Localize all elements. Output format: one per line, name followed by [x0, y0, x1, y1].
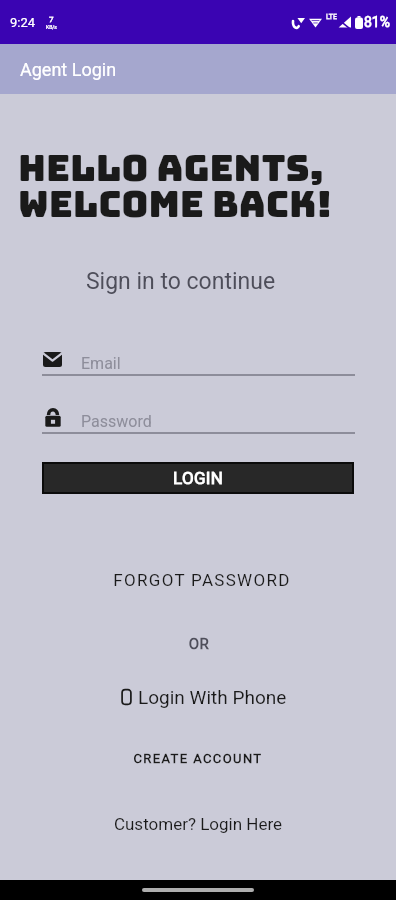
staticText: LOGIN — [173, 468, 224, 488]
staticText: Agent Login — [20, 59, 117, 80]
other: Battery — [355, 16, 363, 29]
staticText: Email — [81, 354, 121, 373]
other: Call over wifi — [292, 16, 305, 29]
button[interactable]: CREATE ACCOUNT — [0, 751, 396, 766]
staticText: HELLO AGENTS, WELCOME BACK! — [18, 143, 332, 228]
button[interactable]: OR — [1, 635, 396, 653]
staticText: Password — [81, 412, 152, 431]
button[interactable]: LOGIN — [44, 464, 352, 492]
staticText: Sign in to continue — [0, 268, 361, 295]
button[interactable]: Customer? Login Here — [0, 814, 396, 834]
staticText: 81% — [364, 14, 390, 30]
other: Mobile signal — [338, 16, 351, 28]
button[interactable]: Login With Phone — [6, 686, 396, 708]
other: Wifi — [309, 16, 322, 28]
staticText: Login With Phone — [138, 686, 287, 708]
staticText: 7 — [49, 15, 54, 24]
staticText: 9:24 — [10, 15, 36, 30]
staticText: LTE — [326, 13, 337, 21]
staticText: KB/s — [46, 24, 57, 30]
button[interactable]: FORGOT PASSWORD — [4, 570, 396, 590]
